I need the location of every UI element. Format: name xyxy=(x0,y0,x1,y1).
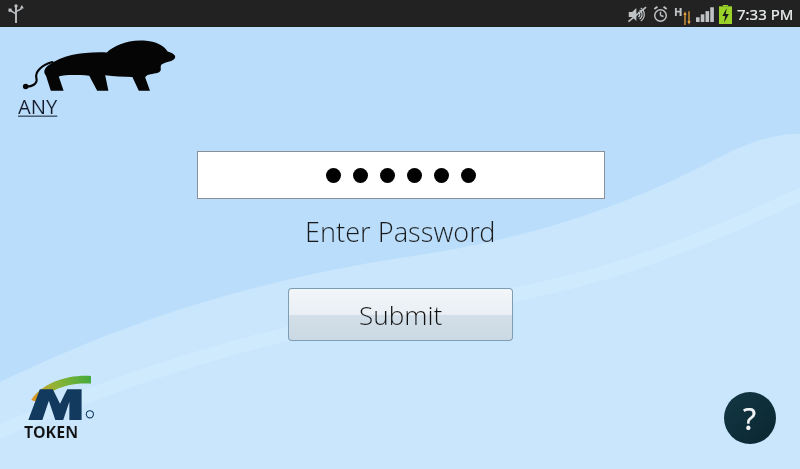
staticText: Submit xyxy=(359,297,443,332)
staticText: ANY INSTITUTION xyxy=(18,93,178,125)
staticText: 7:33 PM xyxy=(737,4,794,24)
staticText: Enter Password xyxy=(305,213,496,250)
button[interactable]: Submit xyxy=(289,289,512,340)
staticText: ? xyxy=(743,398,757,439)
staticText: H xyxy=(674,4,683,19)
staticText: TOKEN xyxy=(24,421,79,443)
button[interactable] xyxy=(198,152,604,198)
button[interactable]: Help xyxy=(724,392,776,444)
